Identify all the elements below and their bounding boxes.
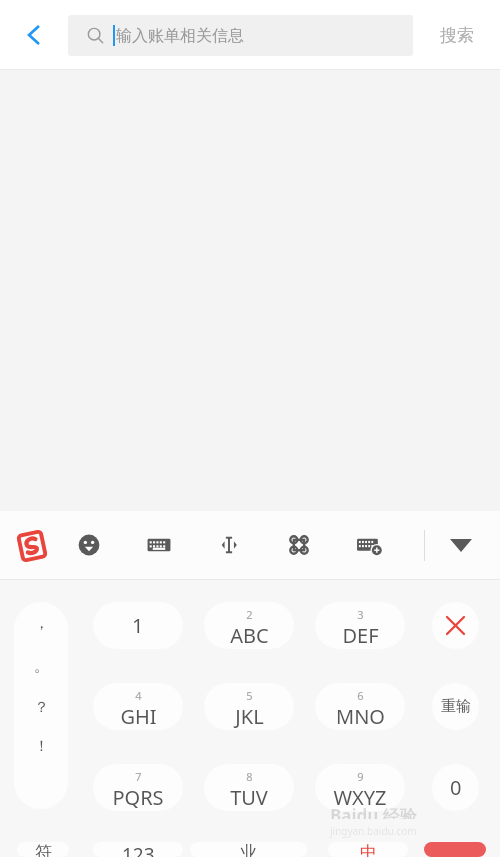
button[interactable]: 中: [328, 842, 408, 857]
button[interactable]: 3: [315, 602, 405, 649]
button[interactable]: 6: [315, 683, 405, 730]
button[interactable]: 8: [204, 764, 294, 811]
button[interactable]: 业: [190, 842, 307, 857]
staticText: jingyan.baidu.com: [330, 824, 417, 838]
staticText: 输入账单相关信息: [116, 26, 244, 46]
staticText: 0: [450, 774, 462, 801]
button[interactable]: Delete: [432, 602, 479, 649]
staticText: ！: [34, 737, 49, 756]
button[interactable]: Keyboard: [143, 529, 175, 561]
staticText: 1: [132, 612, 144, 639]
staticText: 3: [357, 607, 364, 622]
button[interactable]: Zero: [432, 764, 479, 811]
button[interactable]: 输入账单相关信息: [68, 15, 413, 56]
staticText: DEF: [342, 622, 379, 649]
button[interactable]: Back: [0, 0, 68, 70]
staticText: 符: [35, 842, 52, 857]
staticText: 8: [246, 769, 253, 784]
staticText: 7: [135, 769, 142, 784]
staticText: 4: [135, 688, 142, 703]
staticText: TUV: [230, 784, 268, 811]
button[interactable]: Hide keyboard: [437, 530, 485, 561]
staticText: JKL: [235, 703, 264, 730]
staticText: 9: [357, 769, 364, 784]
staticText: Baidu 经验: [330, 804, 417, 819]
staticText: ABC: [230, 622, 269, 649]
button[interactable]: Shortcuts: [283, 529, 315, 561]
button[interactable]: Emoji: [73, 529, 105, 561]
staticText: 6: [357, 688, 364, 703]
staticText: 业: [240, 842, 257, 857]
staticText: 搜索: [440, 25, 474, 46]
staticText: MNO: [336, 703, 385, 730]
staticText: 123: [122, 842, 155, 857]
button[interactable]: 9: [315, 764, 405, 811]
button[interactable]: Cursor: [213, 529, 245, 561]
button[interactable]: ，: [14, 602, 68, 809]
staticText: ？: [34, 698, 49, 717]
button[interactable]: 1: [93, 602, 183, 649]
button[interactable]: Enter: [424, 842, 486, 857]
staticText: 。: [34, 657, 49, 676]
staticText: 2: [246, 607, 253, 622]
button[interactable]: 符: [17, 842, 69, 857]
button[interactable]: 5: [204, 683, 294, 730]
button[interactable]: Sogou input: [16, 530, 48, 562]
staticText: ，: [34, 614, 49, 633]
button[interactable]: 2: [204, 602, 294, 649]
button[interactable]: 7: [93, 764, 183, 811]
staticText: 5: [246, 688, 253, 703]
staticText: 重输: [441, 697, 471, 716]
button[interactable]: Re-enter: [432, 683, 479, 730]
button[interactable]: 123: [93, 842, 183, 857]
button[interactable]: Keyboard settings: [353, 529, 385, 561]
staticText: PQRS: [112, 784, 164, 811]
staticText: GHI: [120, 703, 157, 730]
staticText: WXYZ: [333, 784, 387, 811]
button[interactable]: 4: [93, 683, 183, 730]
staticText: 中: [360, 842, 377, 857]
button[interactable]: 搜索: [413, 0, 500, 70]
